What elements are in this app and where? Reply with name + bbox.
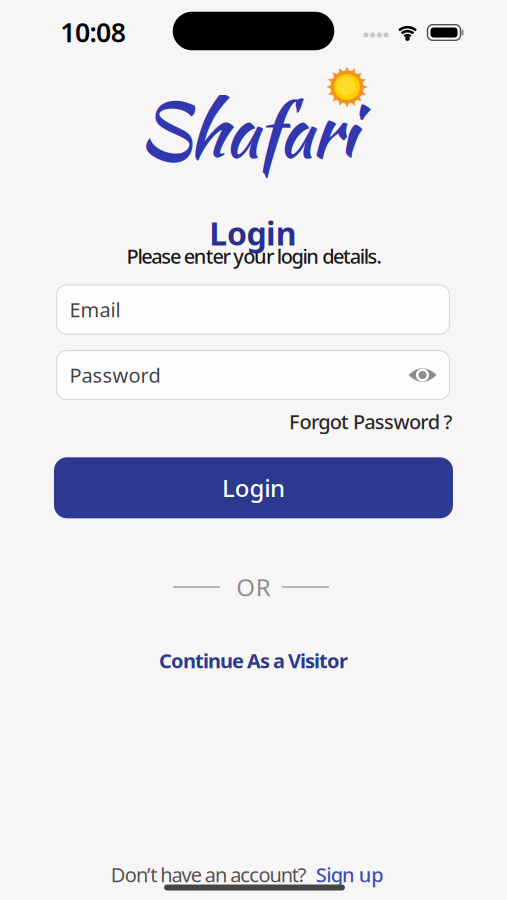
staticText: Email: [69, 296, 120, 323]
staticText: Please enter your login details.: [126, 243, 381, 269]
staticText: 10:08: [60, 14, 126, 50]
staticText: Login: [222, 472, 285, 504]
staticText: Forgot Password ?: [289, 408, 452, 435]
staticText: Login: [209, 212, 297, 254]
button[interactable]: Email text field: [56, 285, 449, 334]
staticText: OR: [236, 571, 271, 603]
button[interactable]: Continue As a Visitor: [159, 647, 348, 674]
button[interactable]: Login: [54, 457, 453, 518]
button[interactable]: Sign up: [316, 861, 383, 888]
staticText: Sign up: [316, 861, 383, 888]
staticText: Password: [69, 362, 160, 388]
staticText: Shafari: [138, 76, 356, 184]
button[interactable]: Password text field: [56, 350, 449, 399]
staticText: Don’t have an account?: [111, 861, 307, 888]
button[interactable]: Forgot Password ?: [289, 408, 452, 435]
button[interactable]: Show password: [408, 367, 436, 383]
staticText: Continue As a Visitor: [159, 647, 348, 674]
